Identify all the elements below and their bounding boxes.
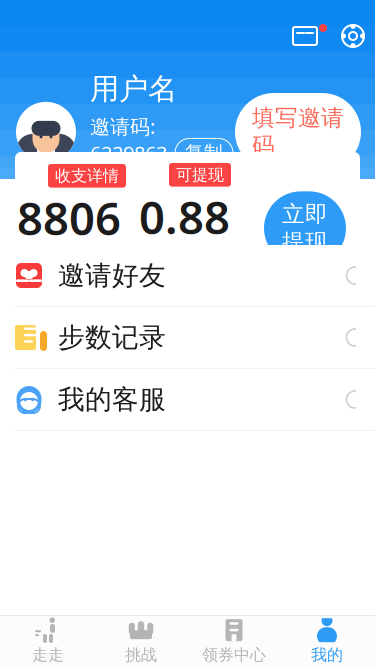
button[interactable]: 填写邀请码 xyxy=(235,93,361,171)
staticText: 当前金币 xyxy=(19,251,99,275)
button[interactable]: 我的客服 xyxy=(0,369,375,430)
button[interactable]: 我的 xyxy=(280,616,373,667)
staticText: 填写邀请码 xyxy=(252,104,344,160)
staticText: 步数记录 xyxy=(58,321,166,354)
staticText: 领券中心 xyxy=(202,645,266,665)
staticText: 可提现 xyxy=(176,165,224,185)
button[interactable]: 复制 xyxy=(175,138,233,167)
staticText: 8806 xyxy=(17,188,121,248)
staticText: 0.88 xyxy=(139,187,230,247)
button[interactable]: 立即提现 xyxy=(264,191,346,265)
staticText: 我的 xyxy=(311,645,343,665)
staticText: 邀请码: 6229863326 xyxy=(90,113,167,193)
button[interactable]: 走走 xyxy=(1,616,94,667)
button[interactable]: 步数记录 xyxy=(0,307,375,368)
staticText: 收支详情 xyxy=(55,166,119,186)
staticText: 邀请好友 xyxy=(58,259,166,292)
button[interactable]: 挑战 xyxy=(94,616,187,667)
button[interactable]: 领券中心 xyxy=(187,616,280,667)
staticText: 我的客服 xyxy=(58,383,166,416)
button[interactable]: Messages xyxy=(287,16,331,56)
staticText: 挑战 xyxy=(125,645,157,665)
button[interactable]: Settings xyxy=(331,16,375,56)
staticText: 复制 xyxy=(185,141,223,164)
staticText: 走走 xyxy=(32,645,64,665)
staticText: 立即提现 xyxy=(282,200,328,256)
staticText: 金额(元) xyxy=(141,250,213,276)
button[interactable]: 邀请好友 xyxy=(0,245,375,306)
staticText: 用户名 xyxy=(90,71,177,107)
